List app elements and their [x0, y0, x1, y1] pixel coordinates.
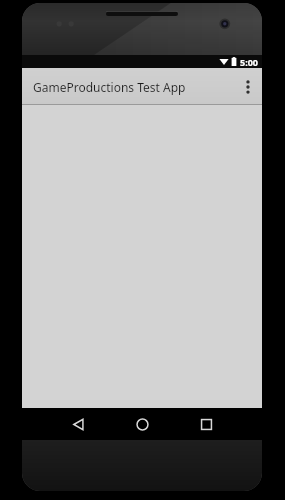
button[interactable]: Home — [116, 408, 168, 440]
staticText: 5:00 — [240, 56, 258, 68]
button[interactable]: More options — [234, 68, 262, 105]
button[interactable]: Recent apps — [180, 408, 232, 440]
button[interactable]: Back — [52, 408, 104, 440]
staticText: GameProductions Test App — [33, 79, 234, 95]
